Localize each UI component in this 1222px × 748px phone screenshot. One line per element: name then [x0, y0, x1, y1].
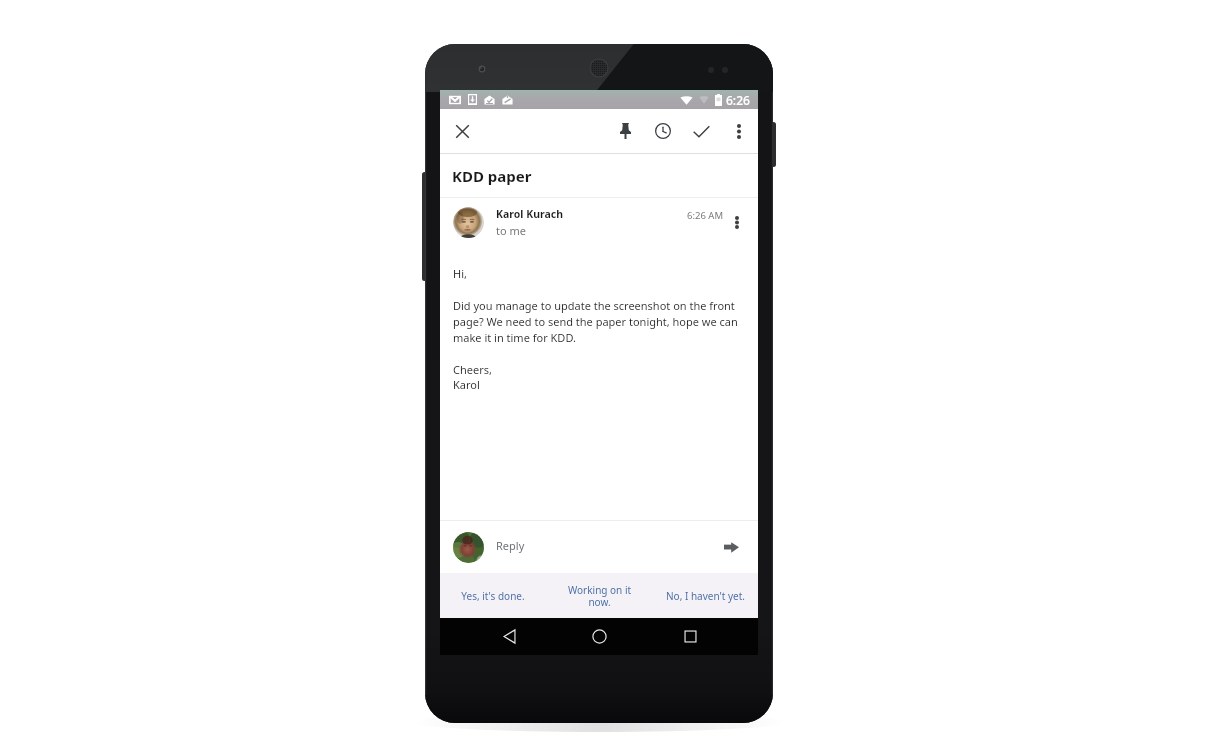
staticText: Working on it now. [566, 583, 633, 609]
button[interactable]: Snooze [644, 109, 682, 153]
button[interactable]: More options [720, 109, 758, 153]
button[interactable]: Working on it now. [546, 573, 652, 618]
button[interactable]: Send [720, 527, 742, 567]
button[interactable]: Recents [668, 618, 712, 655]
staticText: Yes, it's done. [461, 589, 525, 603]
button[interactable]: Close [447, 116, 477, 146]
staticText: No, I haven't yet. [666, 589, 745, 603]
button[interactable]: Reply [440, 521, 758, 573]
staticText: Hi, [453, 266, 467, 281]
button[interactable]: No, I haven't yet. [652, 573, 758, 618]
staticText: 6:26 AM [687, 209, 724, 222]
button[interactable]: Yes, it's done. [440, 573, 546, 618]
staticText: to me [496, 223, 526, 238]
staticText: KDD paper [452, 166, 532, 186]
button[interactable]: Karol Kurach [440, 198, 758, 246]
staticText: Reply [496, 538, 525, 553]
button[interactable]: Done [682, 109, 720, 153]
staticText: Did you manage to update the screenshot … [453, 298, 742, 345]
staticText: Karol [453, 377, 480, 392]
staticText: 6:26 [726, 92, 750, 108]
button[interactable]: Pin [606, 109, 644, 153]
button[interactable]: Message options [730, 200, 744, 244]
staticText: Cheers, [453, 362, 492, 377]
button[interactable]: Back [487, 618, 531, 655]
button[interactable]: Home [577, 618, 621, 655]
staticText: Karol Kurach [496, 207, 563, 221]
